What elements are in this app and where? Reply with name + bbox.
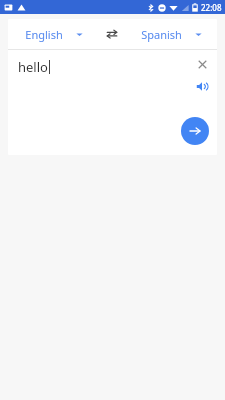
staticText: English <box>25 27 63 42</box>
staticText: hello <box>18 58 48 76</box>
button[interactable]: English <box>8 27 99 42</box>
button[interactable]: Translate <box>181 117 209 145</box>
button[interactable]: Swap languages <box>99 21 125 47</box>
staticText: 22:08 <box>201 2 222 13</box>
button[interactable]: Listen <box>192 76 212 96</box>
button[interactable]: Clear text <box>193 55 211 73</box>
staticText: Spanish <box>141 27 182 42</box>
button[interactable]: Spanish <box>125 27 217 42</box>
